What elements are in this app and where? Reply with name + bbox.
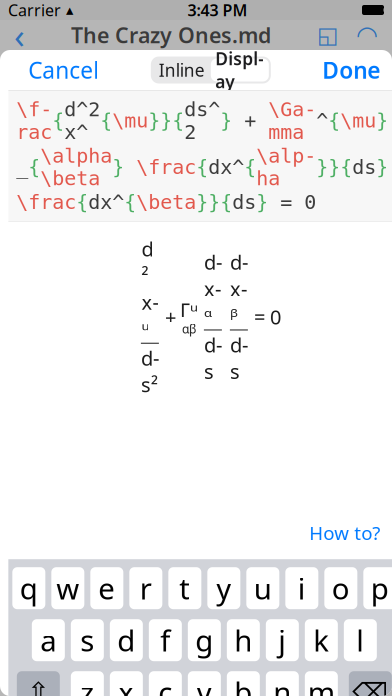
staticText: Inline bbox=[159, 58, 205, 81]
button[interactable]: y bbox=[207, 567, 240, 609]
button[interactable]: w bbox=[51, 567, 84, 609]
staticText: dxᵝ bbox=[230, 249, 248, 328]
staticText: { bbox=[100, 109, 112, 132]
staticText: \frac bbox=[136, 156, 196, 178]
button[interactable]: u bbox=[246, 567, 279, 609]
staticText: dx^ bbox=[88, 191, 124, 213]
button[interactable]: g bbox=[188, 619, 221, 661]
staticText: 3:43 PM bbox=[187, 0, 247, 21]
staticText: k bbox=[313, 621, 329, 660]
staticText: Display bbox=[215, 47, 264, 93]
staticText: w bbox=[56, 569, 79, 608]
staticText: ⌫ bbox=[352, 678, 388, 696]
staticText: a bbox=[40, 621, 56, 660]
button[interactable]: r bbox=[129, 567, 162, 609]
button[interactable]: How to? bbox=[301, 514, 388, 551]
staticText: d²xᵘ bbox=[141, 235, 158, 342]
staticText: f bbox=[160, 621, 170, 660]
staticText: \beta bbox=[136, 191, 196, 213]
button[interactable]: Delete bbox=[349, 671, 392, 696]
button[interactable]: e bbox=[90, 567, 123, 609]
staticText: How to? bbox=[309, 520, 380, 545]
staticText: ◠ bbox=[356, 21, 378, 49]
staticText: }} bbox=[316, 156, 340, 178]
staticText: ▴ bbox=[61, 2, 73, 18]
staticText: { bbox=[28, 156, 40, 178]
staticText: ds^2 bbox=[184, 98, 220, 143]
staticText: { bbox=[328, 109, 340, 132]
staticText: ds bbox=[352, 156, 376, 178]
staticText: } bbox=[220, 109, 232, 132]
staticText: { bbox=[220, 191, 232, 213]
staticText: Cancel bbox=[28, 55, 99, 85]
button[interactable]: Cancel bbox=[24, 52, 103, 88]
staticText: \mu bbox=[340, 109, 376, 132]
staticText: + bbox=[165, 303, 176, 330]
button[interactable]: m bbox=[305, 671, 338, 696]
staticText: { bbox=[172, 109, 184, 132]
button[interactable]: t bbox=[168, 567, 201, 609]
button[interactable]: n bbox=[266, 671, 299, 696]
staticText: \frac bbox=[16, 98, 52, 143]
staticText: { bbox=[124, 191, 136, 213]
staticText: = 0 bbox=[268, 191, 316, 213]
button[interactable]: Inline bbox=[153, 58, 211, 81]
button[interactable]: Display bbox=[211, 58, 269, 81]
staticText: e bbox=[98, 569, 115, 608]
button[interactable]: v bbox=[188, 671, 221, 696]
staticText: The Crazy Ones.md bbox=[71, 21, 271, 49]
staticText: dxᵅ bbox=[204, 249, 222, 328]
button[interactable]: q bbox=[12, 567, 45, 609]
staticText: Γᵘ bbox=[180, 296, 198, 323]
staticText: } bbox=[256, 191, 268, 213]
button[interactable]: s bbox=[71, 619, 104, 661]
staticText: } bbox=[376, 156, 388, 178]
staticText: Done bbox=[322, 55, 380, 85]
button[interactable]: z bbox=[71, 671, 104, 696]
button[interactable]: h bbox=[227, 619, 260, 661]
staticText: \alpha\beta bbox=[40, 144, 112, 190]
button[interactable]: Done bbox=[318, 52, 384, 88]
staticText: j bbox=[278, 621, 286, 660]
staticText: u bbox=[254, 569, 272, 608]
button[interactable]: p bbox=[363, 567, 392, 609]
button[interactable]: f bbox=[149, 619, 182, 661]
staticText: αβ bbox=[182, 321, 196, 337]
button[interactable]: k bbox=[305, 619, 338, 661]
button[interactable]: x bbox=[110, 671, 143, 696]
staticText: dx^ bbox=[208, 156, 244, 178]
button[interactable]: o bbox=[324, 567, 357, 609]
staticText: y bbox=[216, 569, 231, 608]
staticText: o bbox=[332, 569, 350, 608]
staticText: m bbox=[308, 673, 335, 696]
button[interactable]: Shift bbox=[17, 671, 60, 696]
button[interactable]: c bbox=[149, 671, 182, 696]
staticText: { bbox=[76, 191, 88, 213]
button[interactable]: j bbox=[266, 619, 299, 661]
staticText: ◱ bbox=[317, 22, 338, 48]
staticText: d bbox=[117, 621, 135, 660]
staticText: }} bbox=[196, 191, 220, 213]
staticText: \Gamma bbox=[268, 98, 316, 143]
staticText: l bbox=[356, 621, 364, 660]
staticText: g bbox=[195, 621, 213, 660]
staticText: = 0 bbox=[254, 303, 281, 330]
button[interactable]: d bbox=[110, 619, 143, 661]
button[interactable]: l bbox=[344, 619, 377, 661]
staticText: t bbox=[179, 569, 190, 608]
staticText: ^ bbox=[316, 109, 328, 132]
staticText: x bbox=[118, 673, 134, 696]
button[interactable]: b bbox=[227, 671, 260, 696]
staticText: { bbox=[244, 156, 256, 178]
button[interactable]: a bbox=[32, 619, 65, 661]
button[interactable]: i bbox=[285, 567, 318, 609]
staticText: q bbox=[20, 569, 38, 608]
staticText: } bbox=[376, 109, 388, 132]
staticText: ‹ bbox=[14, 12, 25, 58]
staticText: { bbox=[52, 109, 64, 132]
staticText: } bbox=[112, 156, 124, 178]
staticText: i bbox=[298, 569, 306, 608]
staticText: ds bbox=[230, 331, 248, 385]
